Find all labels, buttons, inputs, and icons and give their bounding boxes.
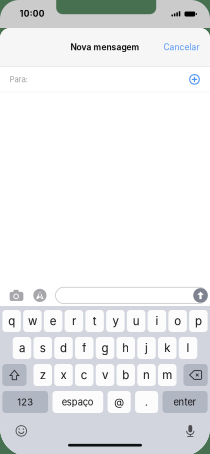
- staticText: s: [40, 341, 46, 355]
- staticText: 10:00: [20, 9, 45, 19]
- button[interactable]: g: [96, 337, 114, 359]
- button[interactable]: b: [116, 364, 135, 386]
- button[interactable]: m: [158, 364, 176, 386]
- staticText: Para:: [9, 75, 27, 84]
- button[interactable]: s: [33, 337, 52, 359]
- staticText: u: [133, 314, 140, 328]
- button[interactable]: k: [158, 337, 176, 359]
- button[interactable]: j: [137, 337, 156, 359]
- button[interactable]: espaço: [52, 391, 103, 413]
- button[interactable]: i: [148, 310, 166, 332]
- staticText: m: [162, 368, 172, 382]
- staticText: f: [82, 341, 86, 355]
- button[interactable]: Cancelar: [153, 35, 210, 59]
- button[interactable]: [2, 364, 26, 386]
- staticText: z: [40, 368, 46, 382]
- button[interactable]: y: [106, 310, 125, 332]
- staticText: t: [93, 314, 97, 328]
- staticText: w: [28, 314, 37, 328]
- button[interactable]: p: [189, 310, 208, 332]
- button[interactable]: Para:: [0, 67, 210, 92]
- staticText: d: [60, 341, 67, 355]
- button[interactable]: a: [13, 337, 31, 359]
- staticText: p: [195, 314, 202, 328]
- staticText: b: [122, 368, 129, 382]
- staticText: h: [122, 341, 129, 355]
- staticText: q: [8, 314, 15, 328]
- button[interactable]: e: [44, 310, 62, 332]
- staticText: l: [186, 341, 189, 355]
- staticText: c: [81, 368, 88, 382]
- button[interactable]: [55, 287, 207, 303]
- button[interactable]: w: [23, 310, 42, 332]
- staticText: x: [60, 368, 66, 382]
- staticText: v: [102, 368, 108, 382]
- button[interactable]: [183, 364, 208, 386]
- button[interactable]: z: [33, 364, 52, 386]
- staticText: y: [112, 314, 118, 328]
- button[interactable]: x: [54, 364, 73, 386]
- button[interactable]: @: [108, 391, 131, 413]
- button[interactable]: Camera: [8, 287, 25, 304]
- button[interactable]: .: [135, 391, 158, 413]
- staticText: espaço: [62, 396, 94, 408]
- staticText: @: [114, 396, 124, 408]
- staticText: n: [143, 368, 150, 382]
- button[interactable]: c: [75, 364, 93, 386]
- staticText: e: [50, 314, 57, 328]
- button[interactable]: v: [96, 364, 114, 386]
- button[interactable]: r: [65, 310, 83, 332]
- button[interactable]: h: [116, 337, 135, 359]
- button[interactable]: 123: [2, 391, 48, 413]
- staticText: Cancelar: [163, 42, 199, 52]
- staticText: a: [19, 341, 25, 355]
- button[interactable]: l: [179, 337, 197, 359]
- button[interactable]: Dictation: [184, 424, 196, 438]
- staticText: 123: [17, 396, 33, 408]
- staticText: i: [155, 314, 158, 328]
- button[interactable]: q: [2, 310, 21, 332]
- staticText: g: [101, 341, 108, 355]
- staticText: k: [164, 341, 170, 355]
- button[interactable]: f: [75, 337, 93, 359]
- button[interactable]: o: [168, 310, 187, 332]
- button[interactable]: u: [127, 310, 145, 332]
- button[interactable]: d: [54, 337, 73, 359]
- staticText: j: [145, 341, 148, 355]
- button[interactable]: n: [137, 364, 156, 386]
- button[interactable]: t: [85, 310, 104, 332]
- staticText: Nova mensagem: [70, 42, 139, 52]
- staticText: .: [145, 396, 148, 408]
- staticText: o: [174, 314, 181, 328]
- staticText: enter: [174, 396, 197, 408]
- button[interactable]: enter: [162, 391, 208, 413]
- button[interactable]: App Store: [32, 287, 48, 304]
- button[interactable]: Emoji: [15, 425, 27, 437]
- staticText: r: [72, 314, 76, 328]
